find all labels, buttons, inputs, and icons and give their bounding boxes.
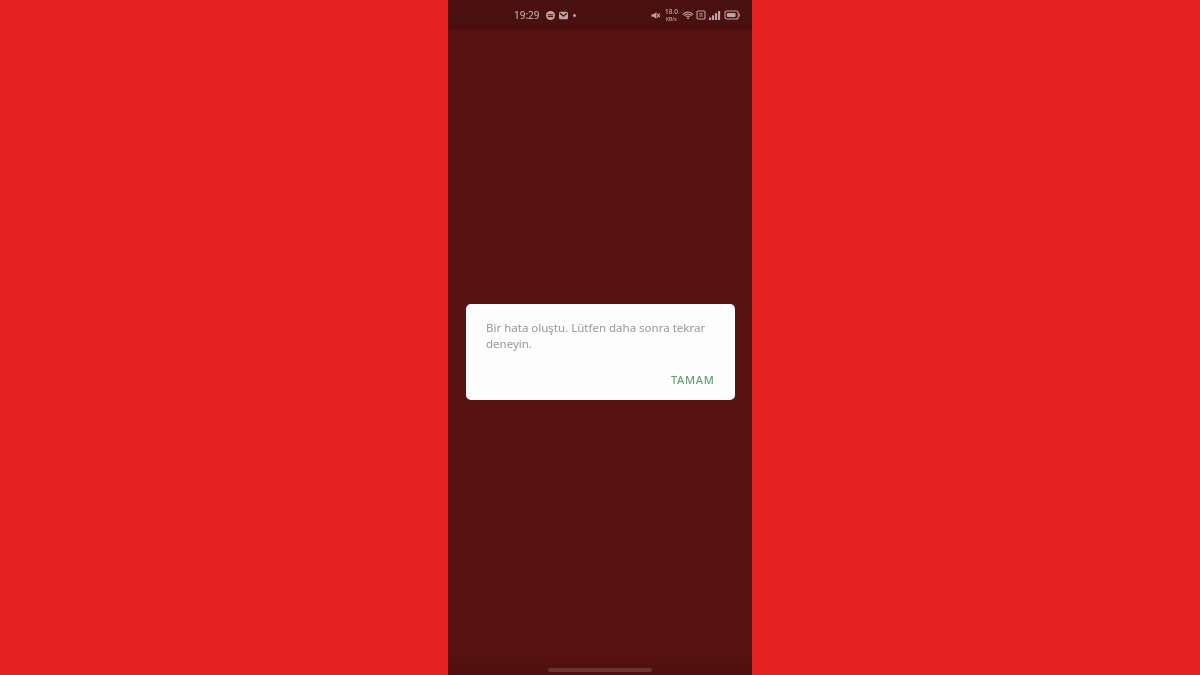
- staticText: TAMAM: [671, 372, 715, 387]
- staticText: 18.0: [665, 7, 678, 16]
- button[interactable]: TAMAM: [657, 365, 729, 394]
- staticText: 19:29: [514, 8, 540, 22]
- staticText: KB/s: [666, 16, 677, 23]
- staticText: Bir hata oluştu. Lütfen daha sonra tekra…: [486, 320, 719, 351]
